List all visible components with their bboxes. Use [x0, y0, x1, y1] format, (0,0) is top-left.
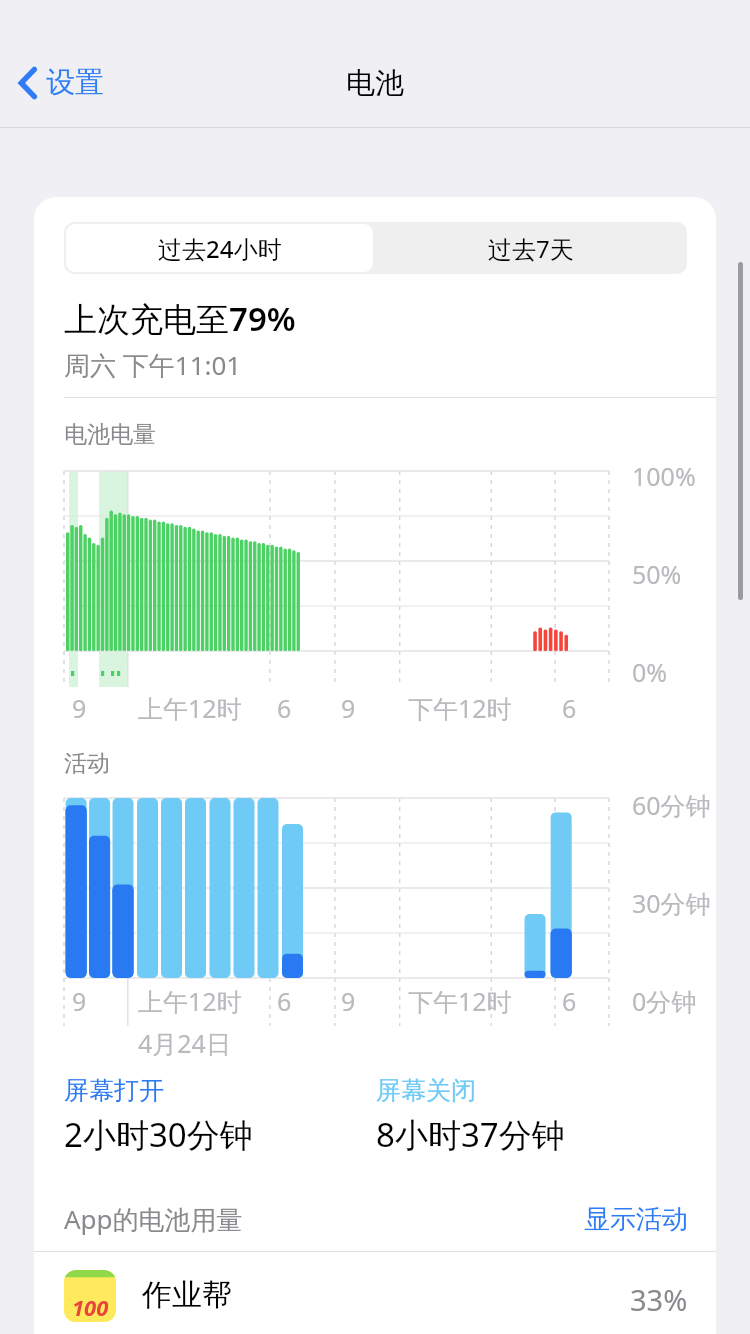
- staticText: 设置: [46, 64, 104, 101]
- staticText: 上午12时: [138, 691, 242, 725]
- staticText: 6: [562, 691, 577, 725]
- staticText: 屏幕打开: [64, 1075, 164, 1106]
- staticText: 下午12时: [408, 984, 512, 1018]
- staticText: 0分钟: [632, 984, 697, 1018]
- staticText: 过去7天: [488, 232, 574, 265]
- staticText: 电池电量: [64, 420, 156, 449]
- staticText: 显示活动: [584, 1203, 688, 1236]
- staticText: 6: [277, 984, 292, 1018]
- staticText: 8小时37分钟: [376, 1112, 565, 1157]
- staticText: 100: [72, 1292, 109, 1322]
- staticText: 活动: [64, 749, 110, 778]
- staticText: 9: [341, 691, 356, 725]
- staticText: 周六 下午11:01: [64, 347, 242, 383]
- staticText: 9: [72, 691, 87, 725]
- staticText: 60分钟: [632, 788, 711, 822]
- staticText: 30分钟: [632, 886, 711, 920]
- staticText: 上次充电至79%: [64, 296, 296, 341]
- staticText: 4月24日: [138, 1026, 231, 1060]
- button[interactable]: 100: [34, 1270, 716, 1334]
- staticText: 6: [277, 691, 292, 725]
- staticText: 2小时30分钟: [64, 1112, 253, 1157]
- staticText: 100%: [632, 459, 696, 493]
- staticText: 屏幕关闭: [376, 1075, 476, 1106]
- staticText: 上午12时: [138, 984, 242, 1018]
- staticText: 50%: [632, 557, 682, 591]
- staticText: 电池: [0, 65, 750, 102]
- staticText: 9: [72, 984, 87, 1018]
- button[interactable]: 设置: [10, 60, 112, 105]
- staticText: 33%: [630, 1280, 688, 1319]
- staticText: App的电池用量: [64, 1201, 243, 1237]
- staticText: 下午12时: [408, 691, 512, 725]
- staticText: 6: [562, 984, 577, 1018]
- button[interactable]: 显示活动: [584, 1203, 688, 1236]
- staticText: 9: [341, 984, 356, 1018]
- button[interactable]: 过去24小时: [66, 224, 373, 272]
- staticText: 作业帮: [142, 1276, 232, 1314]
- staticText: 0%: [632, 655, 668, 689]
- button[interactable]: 过去7天: [375, 222, 687, 274]
- staticText: 过去24小时: [158, 232, 282, 265]
